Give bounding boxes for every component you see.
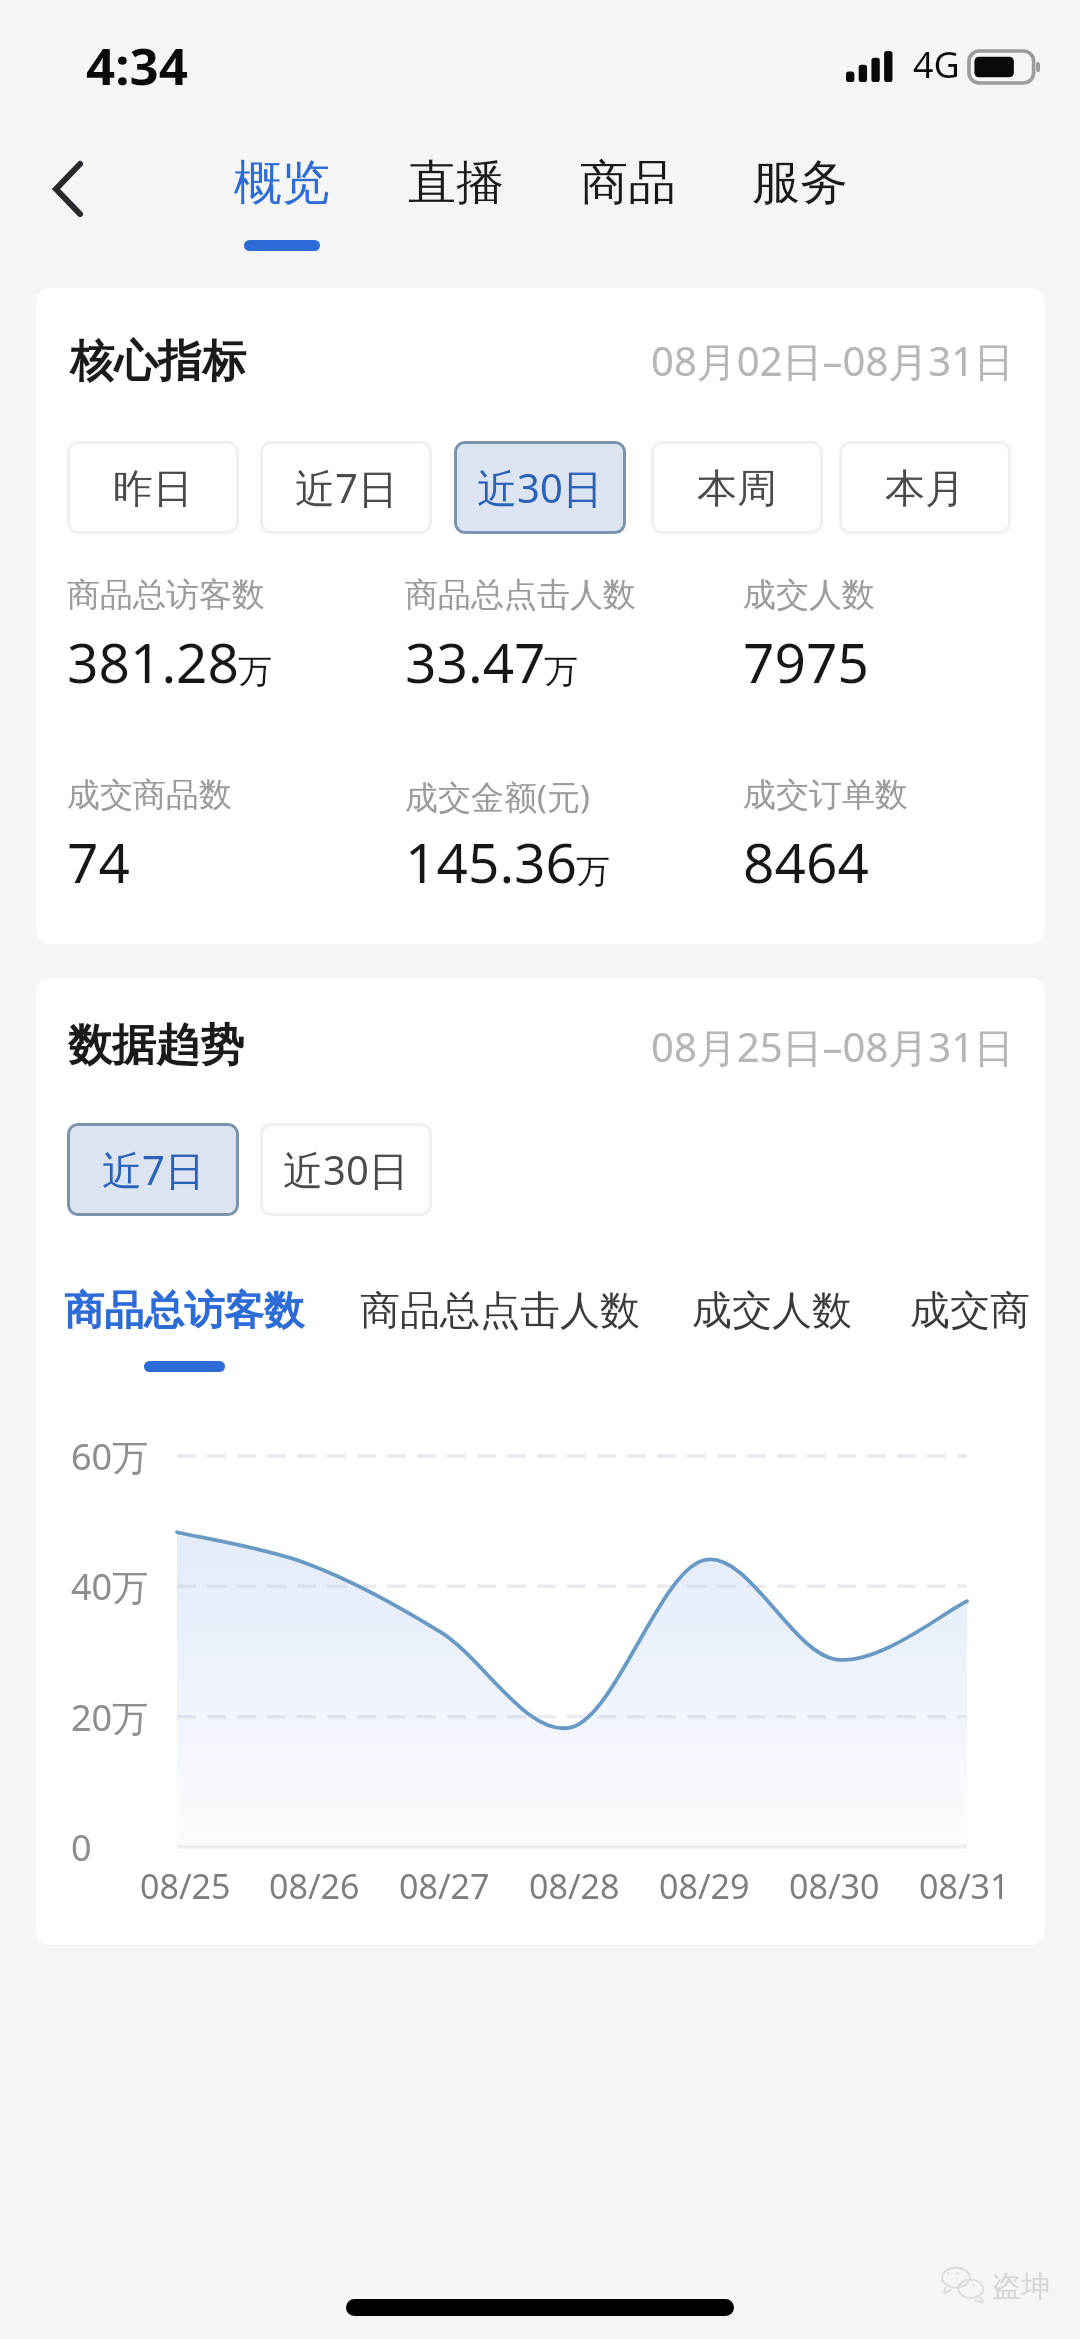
staticText: 万: [576, 850, 610, 893]
button[interactable]: 成交商: [910, 1285, 1030, 1335]
staticText: 商品总访客数: [67, 574, 265, 616]
button[interactable]: 服务: [714, 153, 886, 213]
staticText: 74: [67, 824, 130, 899]
staticText: 成交人数: [743, 574, 875, 616]
staticText: 成交商: [910, 1285, 1030, 1335]
staticText: 盗坤: [992, 2268, 1050, 2305]
staticText: 381.28: [67, 624, 240, 699]
staticText: 08/29: [659, 1863, 750, 1909]
staticText: 近30日: [283, 1142, 409, 1197]
staticText: 商品总点击人数: [405, 574, 636, 616]
staticText: 08/27: [399, 1863, 490, 1909]
button[interactable]: Back: [24, 145, 112, 233]
staticText: 近7日: [295, 460, 398, 515]
staticText: 成交商品数: [67, 774, 232, 816]
button[interactable]: 近7日: [260, 441, 432, 534]
staticText: 7975: [743, 624, 869, 699]
button[interactable]: 近30日: [454, 441, 626, 534]
staticText: 成交人数: [692, 1285, 852, 1335]
staticText: 成交金额(元): [405, 774, 590, 819]
staticText: 万: [238, 650, 272, 693]
staticText: 145.36: [405, 824, 578, 899]
staticText: 核心指标: [70, 334, 246, 389]
staticText: 4G: [913, 40, 960, 89]
staticText: 08/25: [140, 1863, 231, 1909]
staticText: 本周: [697, 463, 777, 513]
staticText: 万: [544, 650, 578, 693]
button[interactable]: 商品总访客数: [64, 1285, 304, 1372]
staticText: 昨日: [113, 463, 193, 513]
button[interactable]: 商品: [542, 153, 714, 213]
staticText: 20万: [71, 1693, 149, 1742]
staticText: 8464: [743, 824, 869, 899]
button[interactable]: 本周: [651, 441, 823, 534]
button[interactable]: 成交人数: [692, 1285, 852, 1335]
staticText: 08/30: [789, 1863, 880, 1909]
staticText: 40万: [71, 1562, 149, 1611]
staticText: 商品总访客数: [64, 1285, 304, 1335]
staticText: 33.47: [405, 624, 546, 699]
staticText: 4:34: [86, 30, 188, 99]
staticText: 0: [71, 1823, 92, 1872]
button[interactable]: 直播: [370, 153, 542, 213]
staticText: 08月02日–08月31日: [651, 333, 1015, 388]
staticText: 服务: [752, 153, 848, 213]
staticText: 08/28: [529, 1863, 620, 1909]
staticText: 概览: [234, 153, 330, 213]
button[interactable]: 昨日: [67, 441, 239, 534]
staticText: 商品总点击人数: [360, 1285, 640, 1335]
staticText: 成交订单数: [743, 774, 908, 816]
staticText: 60万: [71, 1432, 149, 1481]
staticText: 商品: [580, 153, 676, 213]
button[interactable]: 近30日: [260, 1123, 432, 1216]
button[interactable]: 本月: [839, 441, 1011, 534]
staticText: 数据趋势: [68, 1018, 244, 1073]
staticText: 08/26: [269, 1863, 360, 1909]
staticText: 直播: [408, 153, 504, 213]
button[interactable]: 近7日: [67, 1123, 239, 1216]
button[interactable]: 概览: [196, 153, 368, 251]
staticText: 08/31: [919, 1863, 1010, 1909]
staticText: 本月: [885, 463, 965, 513]
button[interactable]: 商品总点击人数: [360, 1285, 640, 1335]
staticText: 08月25日–08月31日: [651, 1019, 1015, 1074]
staticText: 近30日: [477, 460, 603, 515]
staticText: 近7日: [102, 1142, 205, 1197]
